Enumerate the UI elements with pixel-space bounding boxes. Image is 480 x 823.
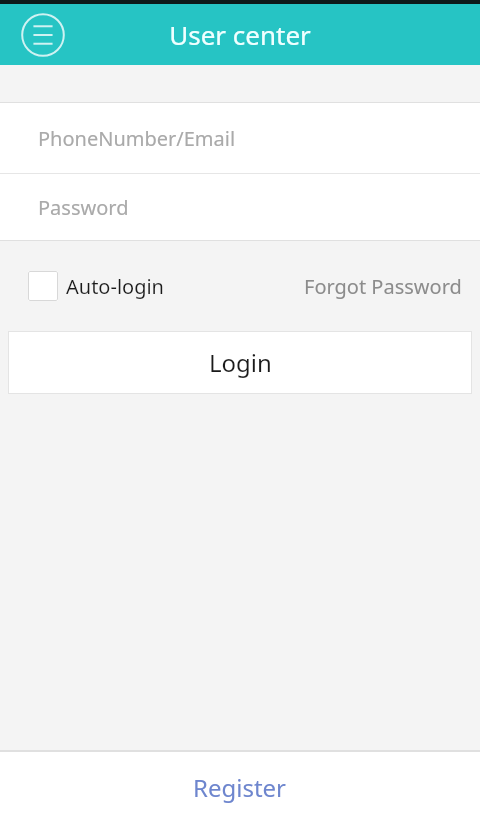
button[interactable]: Login — [8, 331, 472, 394]
button[interactable]: Password — [0, 174, 480, 240]
staticText: Auto-login — [66, 273, 164, 300]
button[interactable]: PhoneNumber/Email — [0, 103, 480, 173]
staticText: Password — [38, 194, 129, 221]
button[interactable]: Auto-login — [28, 271, 164, 301]
staticText: PhoneNumber/Email — [38, 125, 236, 152]
staticText: Login — [209, 346, 272, 379]
staticText: Forgot Password — [304, 273, 462, 300]
staticText: User center — [169, 17, 311, 52]
button[interactable]: Register — [0, 752, 480, 823]
button[interactable]: Forgot Password — [304, 273, 462, 300]
button[interactable]: Menu — [21, 13, 65, 57]
staticText: Register — [193, 771, 287, 804]
